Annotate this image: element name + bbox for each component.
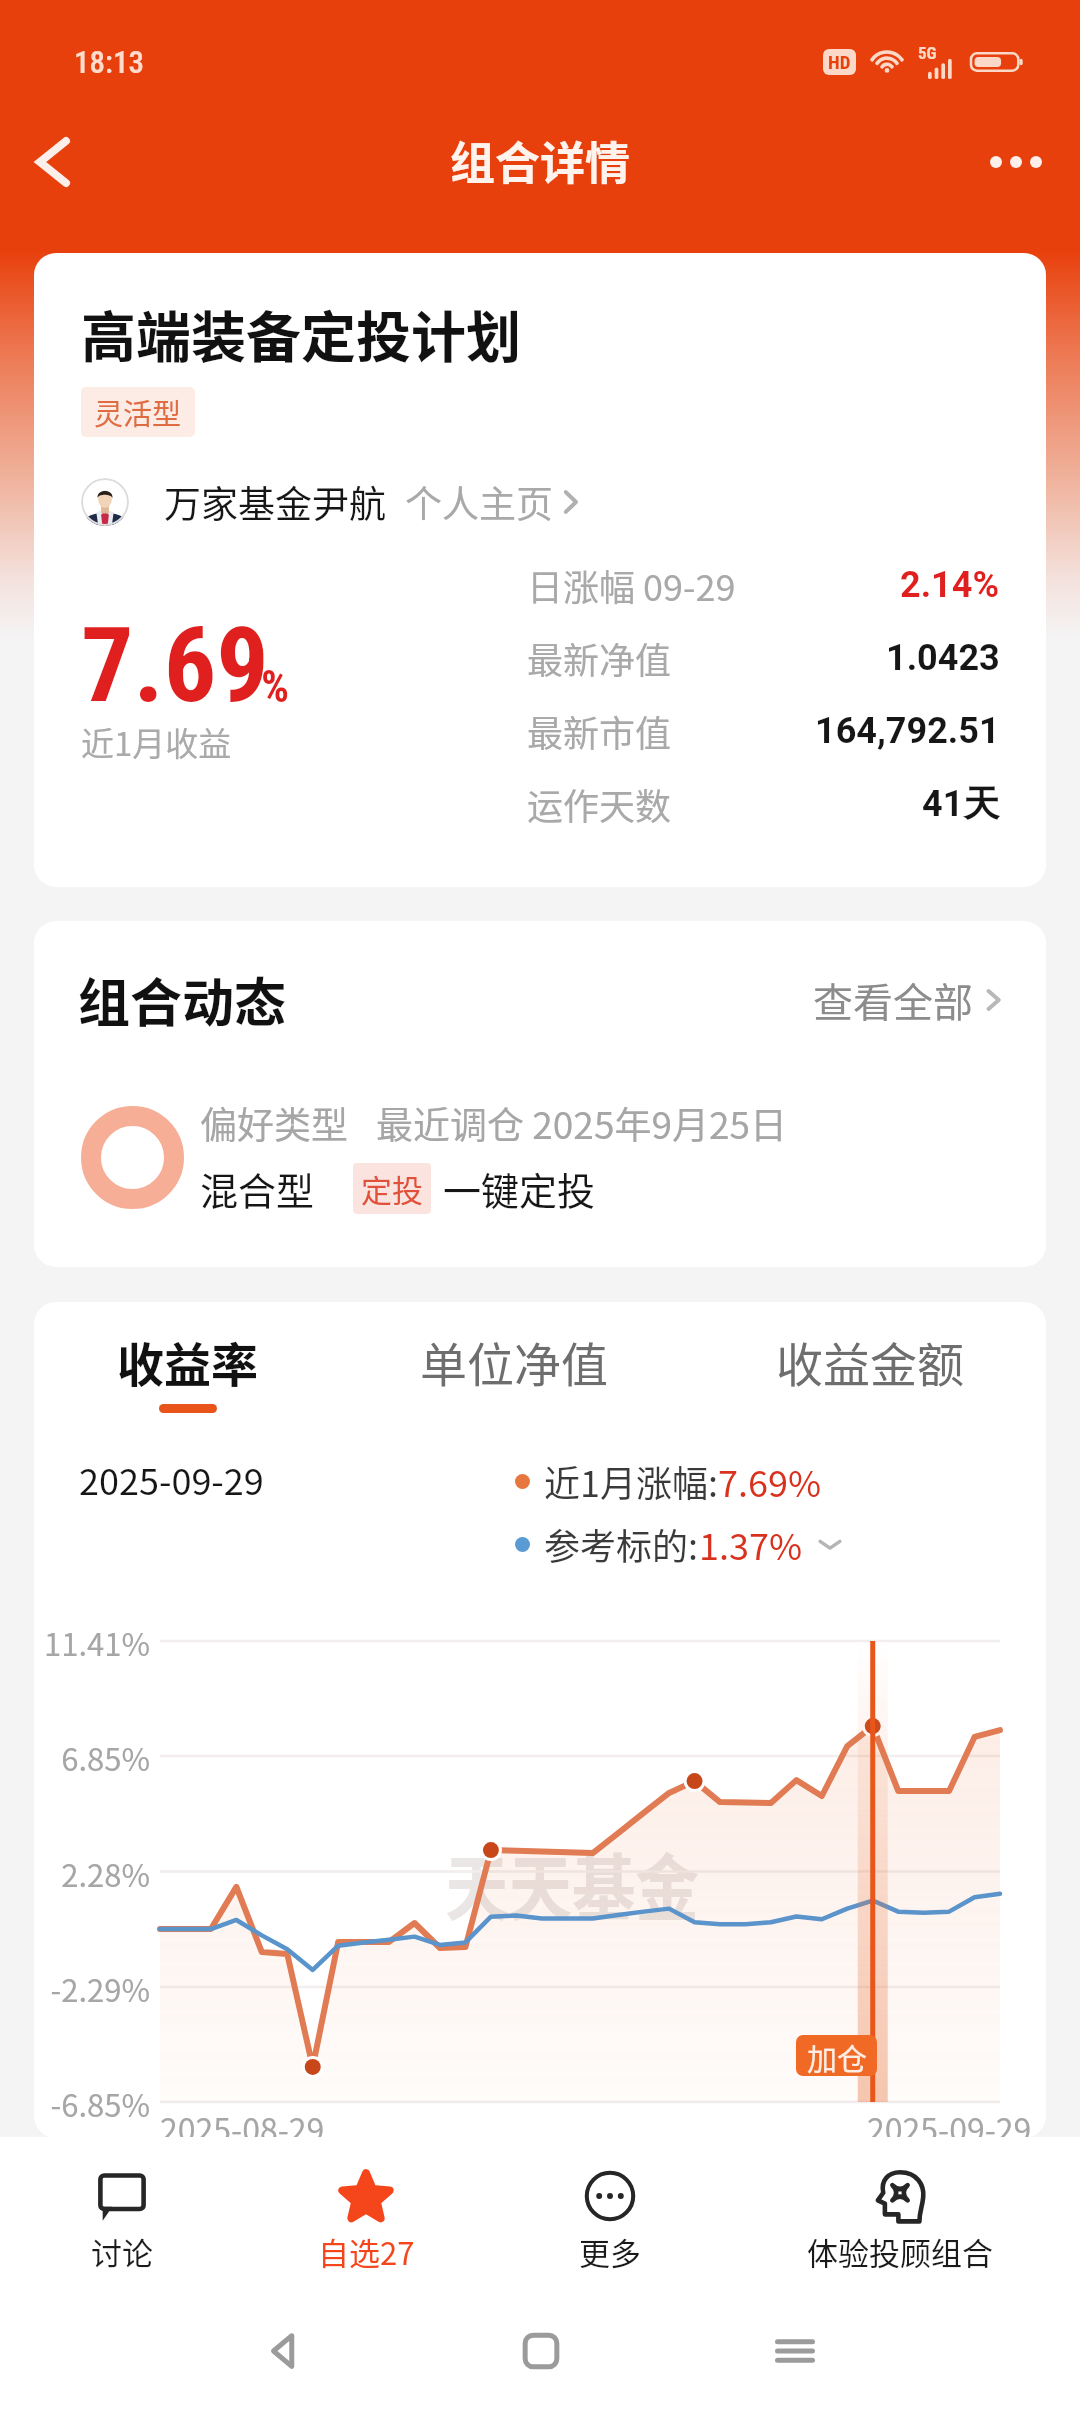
staticText: 最新市值 (527, 705, 672, 757)
staticText: 更多 (579, 2229, 641, 2274)
staticText: 164,792.51 (815, 710, 1000, 752)
button[interactable]: 收益金额 (776, 1327, 964, 1395)
staticText: 高端装备定投计划 (81, 293, 522, 373)
staticText: 1.0423 (886, 637, 1000, 679)
staticText: 7.69 (81, 605, 269, 705)
button[interactable]: 收益率 (117, 1327, 258, 1413)
staticText: 5G (918, 43, 937, 63)
staticText: 参考标的: (544, 1518, 699, 1570)
button[interactable]: 体验投顾组合 (750, 2137, 1050, 2274)
staticText: 讨论 (91, 2229, 153, 2274)
staticText: 一键定投 (443, 1161, 596, 1216)
staticText: 自选27 (318, 2229, 415, 2274)
button[interactable]: 参考标的: (515, 1518, 843, 1570)
staticText: -6.85% (34, 2081, 150, 2126)
staticText: 收益率 (117, 1327, 258, 1395)
staticText: 近1月收益 (81, 718, 232, 766)
button[interactable]: 定投 (361, 1166, 423, 1211)
staticText: 6.85% (34, 1735, 150, 1780)
staticText: 体验投顾组合 (807, 2229, 993, 2274)
staticText: 2.28% (34, 1851, 150, 1896)
button[interactable]: 加仓 (796, 2035, 877, 2076)
staticText: -2.29% (34, 1966, 150, 2011)
button[interactable]: 万家基金尹航 (81, 475, 585, 529)
staticText: 1.37% (699, 1518, 803, 1570)
staticText: 41天 (922, 781, 1000, 826)
staticText: 查看全部 (813, 971, 973, 1029)
button[interactable]: Back (8, 117, 98, 207)
button[interactable]: More options (971, 117, 1061, 207)
button[interactable]: 单位净值 (420, 1327, 608, 1395)
staticText: 最近调仓 2025年9月25日 (376, 1096, 788, 1150)
button[interactable]: 更多 (460, 2137, 760, 2274)
staticText: 日涨幅 09-29 (527, 559, 736, 611)
staticText: 定投 (361, 1166, 423, 1211)
staticText: HD (828, 51, 851, 73)
staticText: 18:13 (74, 44, 144, 80)
staticText: % (261, 661, 290, 713)
staticText: 灵活型 (94, 391, 182, 433)
staticText: 加仓 (807, 2035, 867, 2076)
staticText: 2025-09-29 (867, 2105, 1032, 2138)
staticText: 偏好类型 (200, 1096, 348, 1150)
button[interactable]: 讨论 (0, 2137, 272, 2274)
staticText: 万家基金尹航 (164, 475, 386, 529)
staticText: 2.14% (900, 564, 1000, 606)
staticText: 最新净值 (527, 632, 672, 684)
staticText: 混合型 (200, 1161, 315, 1216)
staticText: 11.41% (34, 1620, 150, 1665)
staticText: 运作天数 (527, 778, 672, 830)
staticText: 近1月涨幅: (544, 1455, 718, 1507)
button[interactable]: 查看全部 (813, 971, 1009, 1029)
staticText: 2025-08-29 (160, 2105, 325, 2138)
staticText: 7.69% (718, 1455, 822, 1507)
staticText: 个人主页 (405, 475, 553, 529)
staticText: 组合详情 (450, 128, 631, 193)
staticText: 组合动态 (78, 962, 287, 1037)
staticText: 天天基金 (445, 1830, 700, 1934)
staticText: 2025-09-29 (79, 1453, 264, 1505)
button[interactable]: 自选27 (216, 2137, 516, 2274)
